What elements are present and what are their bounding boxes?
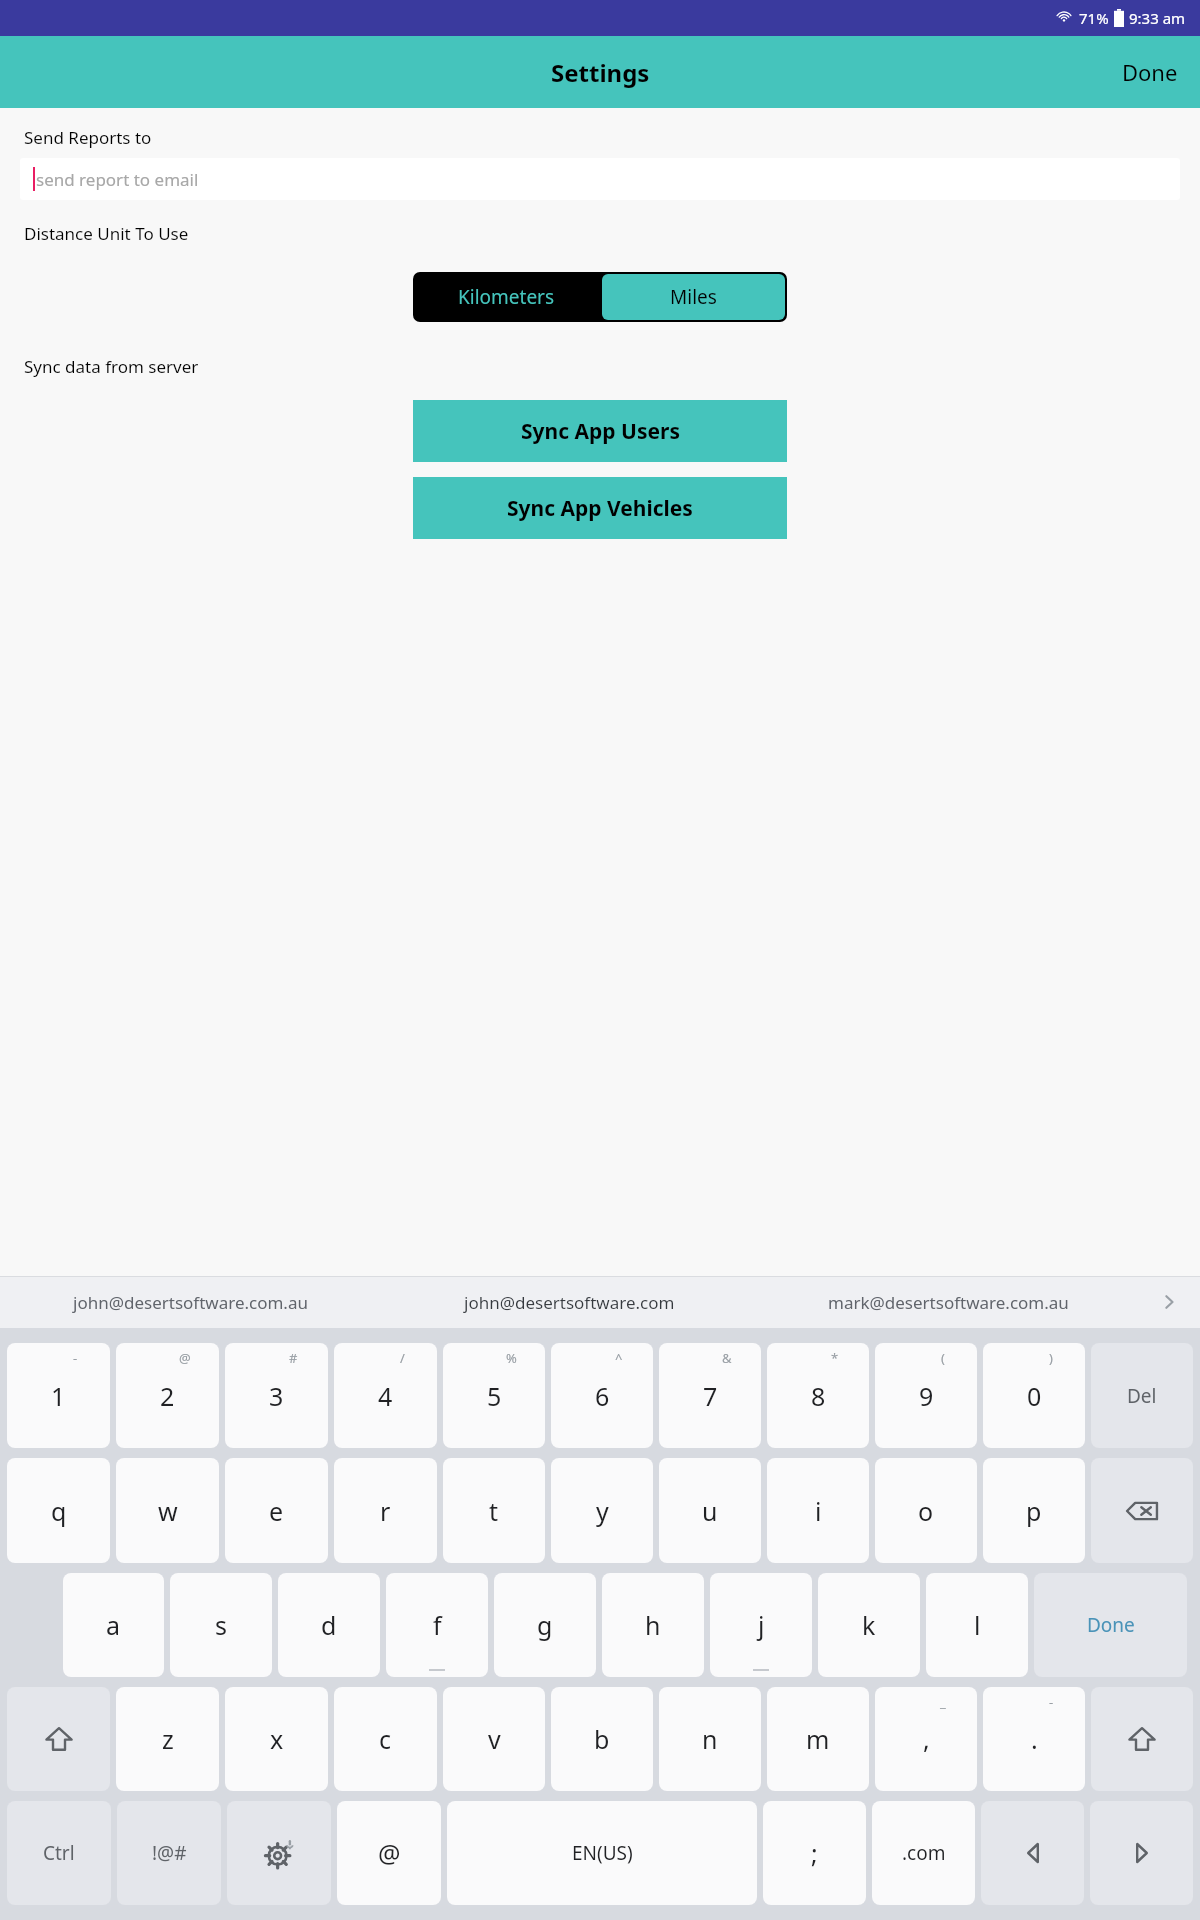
button[interactable]: john@desertsoftware.com.au — [0, 1276, 380, 1328]
staticText: Send Reports to — [24, 126, 152, 149]
staticText: v — [488, 1722, 501, 1756]
staticText: @ — [378, 1836, 401, 1870]
button[interactable]: Move cursor right — [1090, 1801, 1193, 1905]
button[interactable]: Kilometers — [413, 272, 600, 322]
button[interactable]: send report to email — [20, 158, 1180, 200]
staticText: @ — [179, 1349, 191, 1367]
staticText: Miles — [670, 284, 717, 310]
staticText: * — [831, 1349, 839, 1367]
button[interactable]: k — [818, 1573, 920, 1677]
button[interactable]: n — [659, 1687, 761, 1791]
staticText: Ctrl — [43, 1840, 75, 1866]
button[interactable]: 8 — [767, 1343, 869, 1448]
button[interactable]: More suggestions — [1138, 1276, 1200, 1328]
button[interactable]: z — [116, 1687, 219, 1791]
button[interactable]: a — [63, 1573, 164, 1677]
staticText: d — [321, 1608, 337, 1642]
staticText: p — [1026, 1494, 1042, 1528]
button[interactable]: m — [767, 1687, 869, 1791]
button[interactable]: x — [225, 1687, 328, 1791]
button[interactable]: j — [710, 1573, 812, 1677]
staticText: m — [806, 1722, 830, 1756]
staticText: y — [596, 1494, 609, 1528]
button[interactable]: q — [7, 1458, 110, 1563]
button[interactable]: Sync App Users — [413, 400, 787, 462]
button[interactable]: 9 — [875, 1343, 977, 1448]
button[interactable]: mark@desertsoftware.com.au — [759, 1276, 1138, 1328]
staticText: !@# — [152, 1840, 187, 1866]
button[interactable]: 6 — [551, 1343, 653, 1448]
staticText: Sync App Users — [521, 417, 680, 446]
staticText: - — [1049, 1693, 1054, 1711]
staticText: # — [289, 1349, 298, 1367]
button[interactable]: Keyboard settings — [227, 1801, 331, 1905]
button[interactable]: r — [334, 1458, 437, 1563]
staticText: send report to email — [36, 168, 199, 191]
button[interactable]: Miles — [602, 274, 785, 320]
button[interactable]: Move cursor left — [981, 1801, 1084, 1905]
button[interactable]: i — [767, 1458, 869, 1563]
button[interactable]: .com — [872, 1801, 975, 1905]
staticText: 9:33 am — [1129, 8, 1186, 28]
button[interactable]: g — [494, 1573, 596, 1677]
button[interactable]: b — [551, 1687, 653, 1791]
staticText: n — [702, 1722, 718, 1756]
staticText: Done — [1087, 1612, 1135, 1638]
button[interactable]: Done — [1034, 1573, 1187, 1677]
button[interactable]: e — [225, 1458, 328, 1563]
button[interactable]: Sync App Vehicles — [413, 477, 787, 539]
button[interactable]: Done — [1100, 43, 1200, 101]
staticText: % — [506, 1349, 517, 1367]
button[interactable]: 7 — [659, 1343, 761, 1448]
button[interactable]: f — [386, 1573, 488, 1677]
button[interactable]: u — [659, 1458, 761, 1563]
button[interactable]: 1 — [7, 1343, 110, 1448]
staticText: 9 — [919, 1379, 934, 1413]
staticText: g — [537, 1608, 553, 1642]
button[interactable]: w — [116, 1458, 219, 1563]
button[interactable]: Shift — [1091, 1687, 1193, 1791]
staticText: john@desertsoftware.com — [464, 1291, 675, 1314]
button[interactable]: Backspace — [1091, 1458, 1193, 1563]
button[interactable]: 3 — [225, 1343, 328, 1448]
staticText: e — [269, 1494, 284, 1528]
button[interactable]: Ctrl — [7, 1801, 111, 1905]
button[interactable]: john@desertsoftware.com — [380, 1276, 759, 1328]
button[interactable]: p — [983, 1458, 1085, 1563]
button[interactable]: o — [875, 1458, 977, 1563]
button[interactable]: t — [443, 1458, 545, 1563]
button[interactable]: 4 — [334, 1343, 437, 1448]
staticText: 8 — [811, 1379, 826, 1413]
button[interactable]: y — [551, 1458, 653, 1563]
button[interactable]: , — [875, 1687, 977, 1791]
staticText: Done — [1122, 57, 1178, 87]
button[interactable]: EN(US) — [447, 1801, 757, 1905]
button[interactable]: 2 — [116, 1343, 219, 1448]
button[interactable]: v — [443, 1687, 545, 1791]
staticText: EN(US) — [572, 1840, 633, 1866]
button[interactable]: d — [278, 1573, 380, 1677]
button[interactable]: Shift — [7, 1687, 110, 1791]
staticText: z — [162, 1722, 174, 1756]
button[interactable]: s — [170, 1573, 272, 1677]
button[interactable]: ; — [763, 1801, 866, 1905]
staticText: .com — [902, 1840, 946, 1866]
staticText: b — [594, 1722, 610, 1756]
staticText: 6 — [595, 1379, 610, 1413]
button[interactable]: 0 — [983, 1343, 1085, 1448]
button[interactable]: 5 — [443, 1343, 545, 1448]
staticText: t — [489, 1494, 499, 1528]
staticText: k — [862, 1608, 876, 1642]
staticText: c — [379, 1722, 392, 1756]
button[interactable]: c — [334, 1687, 437, 1791]
button[interactable]: Del — [1091, 1343, 1193, 1448]
button[interactable]: l — [926, 1573, 1028, 1677]
button[interactable]: !@# — [117, 1801, 221, 1905]
button[interactable]: . — [983, 1687, 1085, 1791]
button[interactable]: h — [602, 1573, 704, 1677]
staticText: ) — [1049, 1349, 1053, 1367]
button[interactable]: @ — [337, 1801, 441, 1905]
staticText: 0 — [1027, 1379, 1042, 1413]
staticText: x — [270, 1722, 284, 1756]
staticText: u — [702, 1494, 718, 1528]
